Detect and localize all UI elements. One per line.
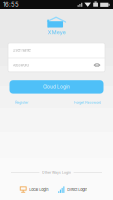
button[interactable]: Register: [15, 99, 28, 105]
staticText: 16:55: [3, 1, 19, 8]
staticText: Direct Login: [67, 187, 87, 192]
button[interactable]: Local Login: [20, 185, 48, 193]
button[interactable]: Direct Login: [58, 185, 87, 193]
button[interactable]: Password: [8, 58, 105, 72]
staticText: XMeye: [47, 29, 65, 36]
staticText: Cloud Login: [43, 84, 70, 90]
staticText: Password: [13, 63, 29, 67]
staticText: Username: [13, 48, 31, 53]
staticText: Forget Password: [74, 100, 101, 105]
staticText: Other Ways Login: [42, 171, 71, 175]
staticText: Register: [15, 100, 28, 105]
button[interactable]: Username: [8, 43, 105, 58]
staticText: Local Login: [29, 187, 48, 192]
button[interactable]: Cloud Login: [9, 80, 103, 94]
button[interactable]: Forget Password: [74, 99, 101, 105]
